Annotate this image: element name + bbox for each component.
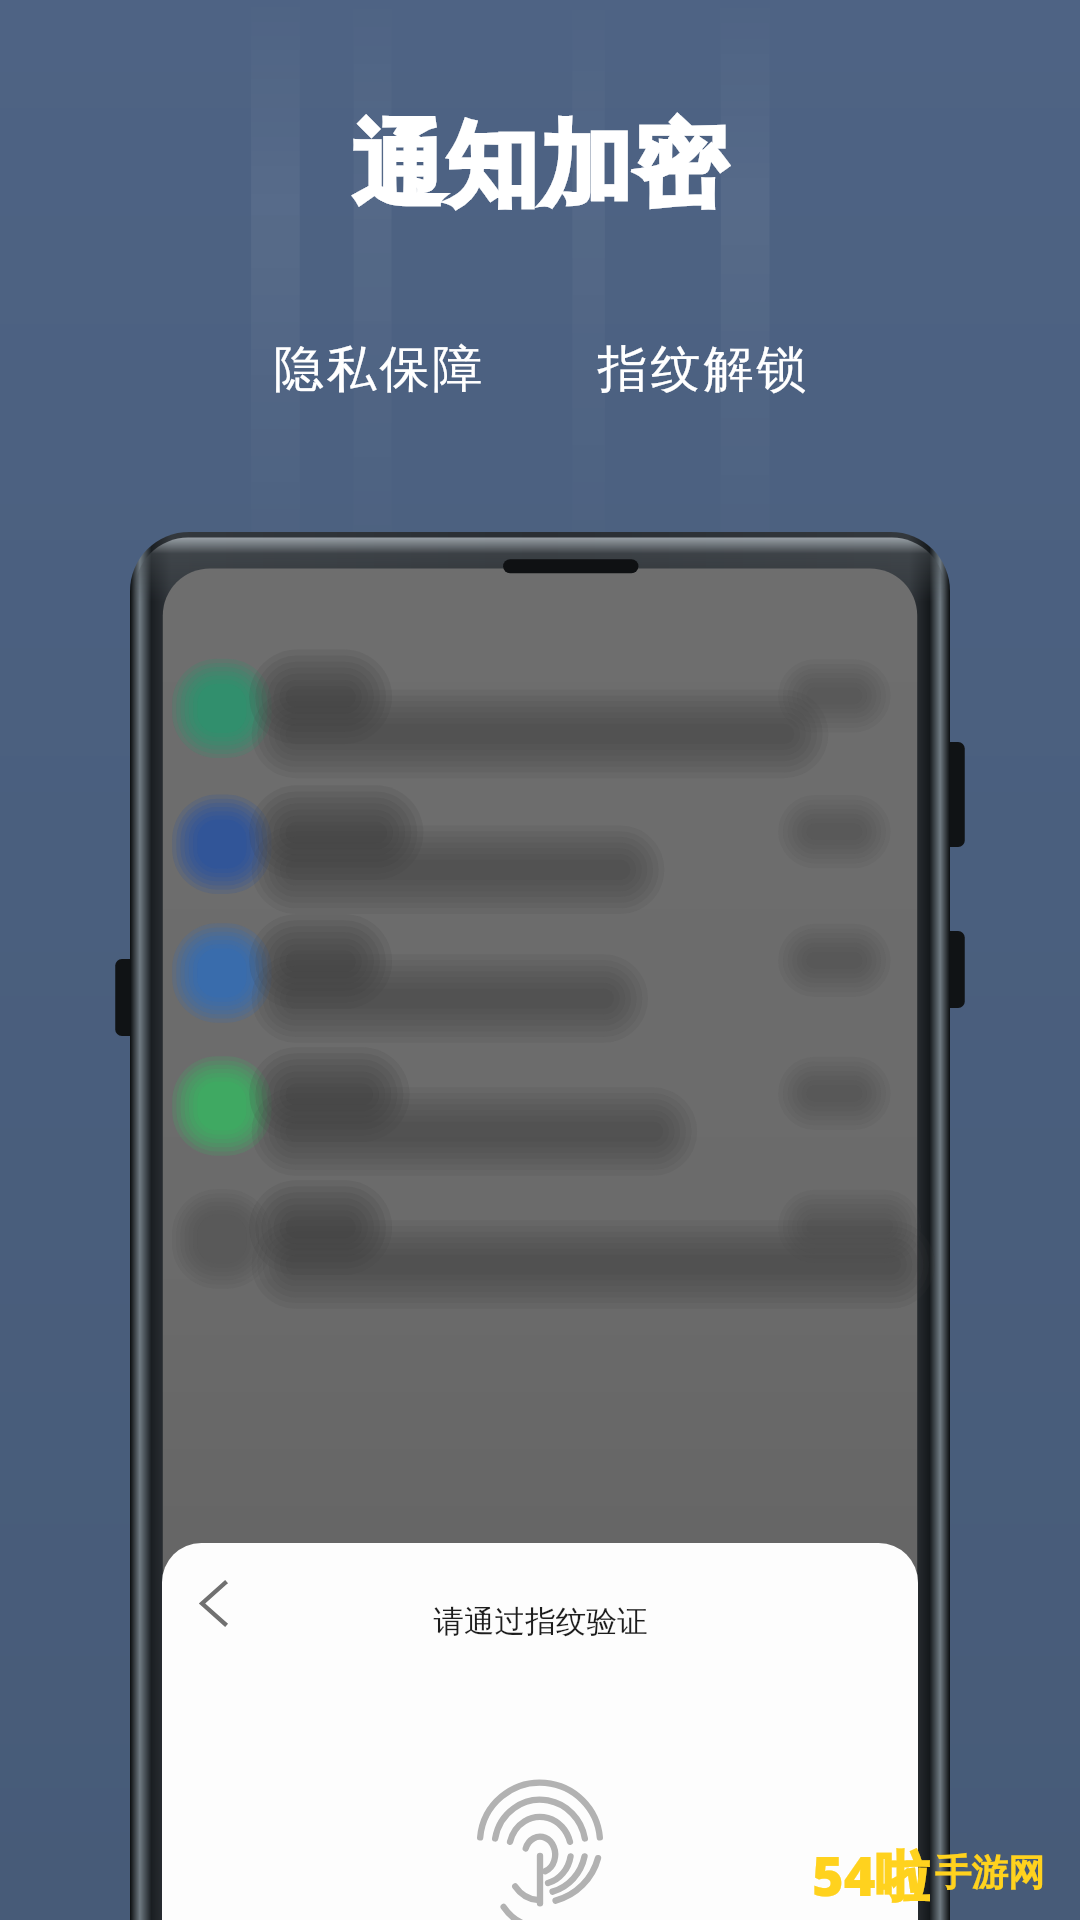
staticText: 手游网: [935, 1850, 1045, 1896]
button[interactable]: Fingerprint: [474, 1774, 606, 1906]
button[interactable]: Back: [176, 1564, 255, 1643]
staticText: 隐私保障: [272, 338, 484, 401]
staticText: 通知加密: [0, 108, 1080, 224]
staticText: 54啦: [812, 1838, 930, 1908]
staticText: 请通过指纹验证: [433, 1603, 648, 1642]
staticText: 指纹解锁: [596, 338, 808, 401]
